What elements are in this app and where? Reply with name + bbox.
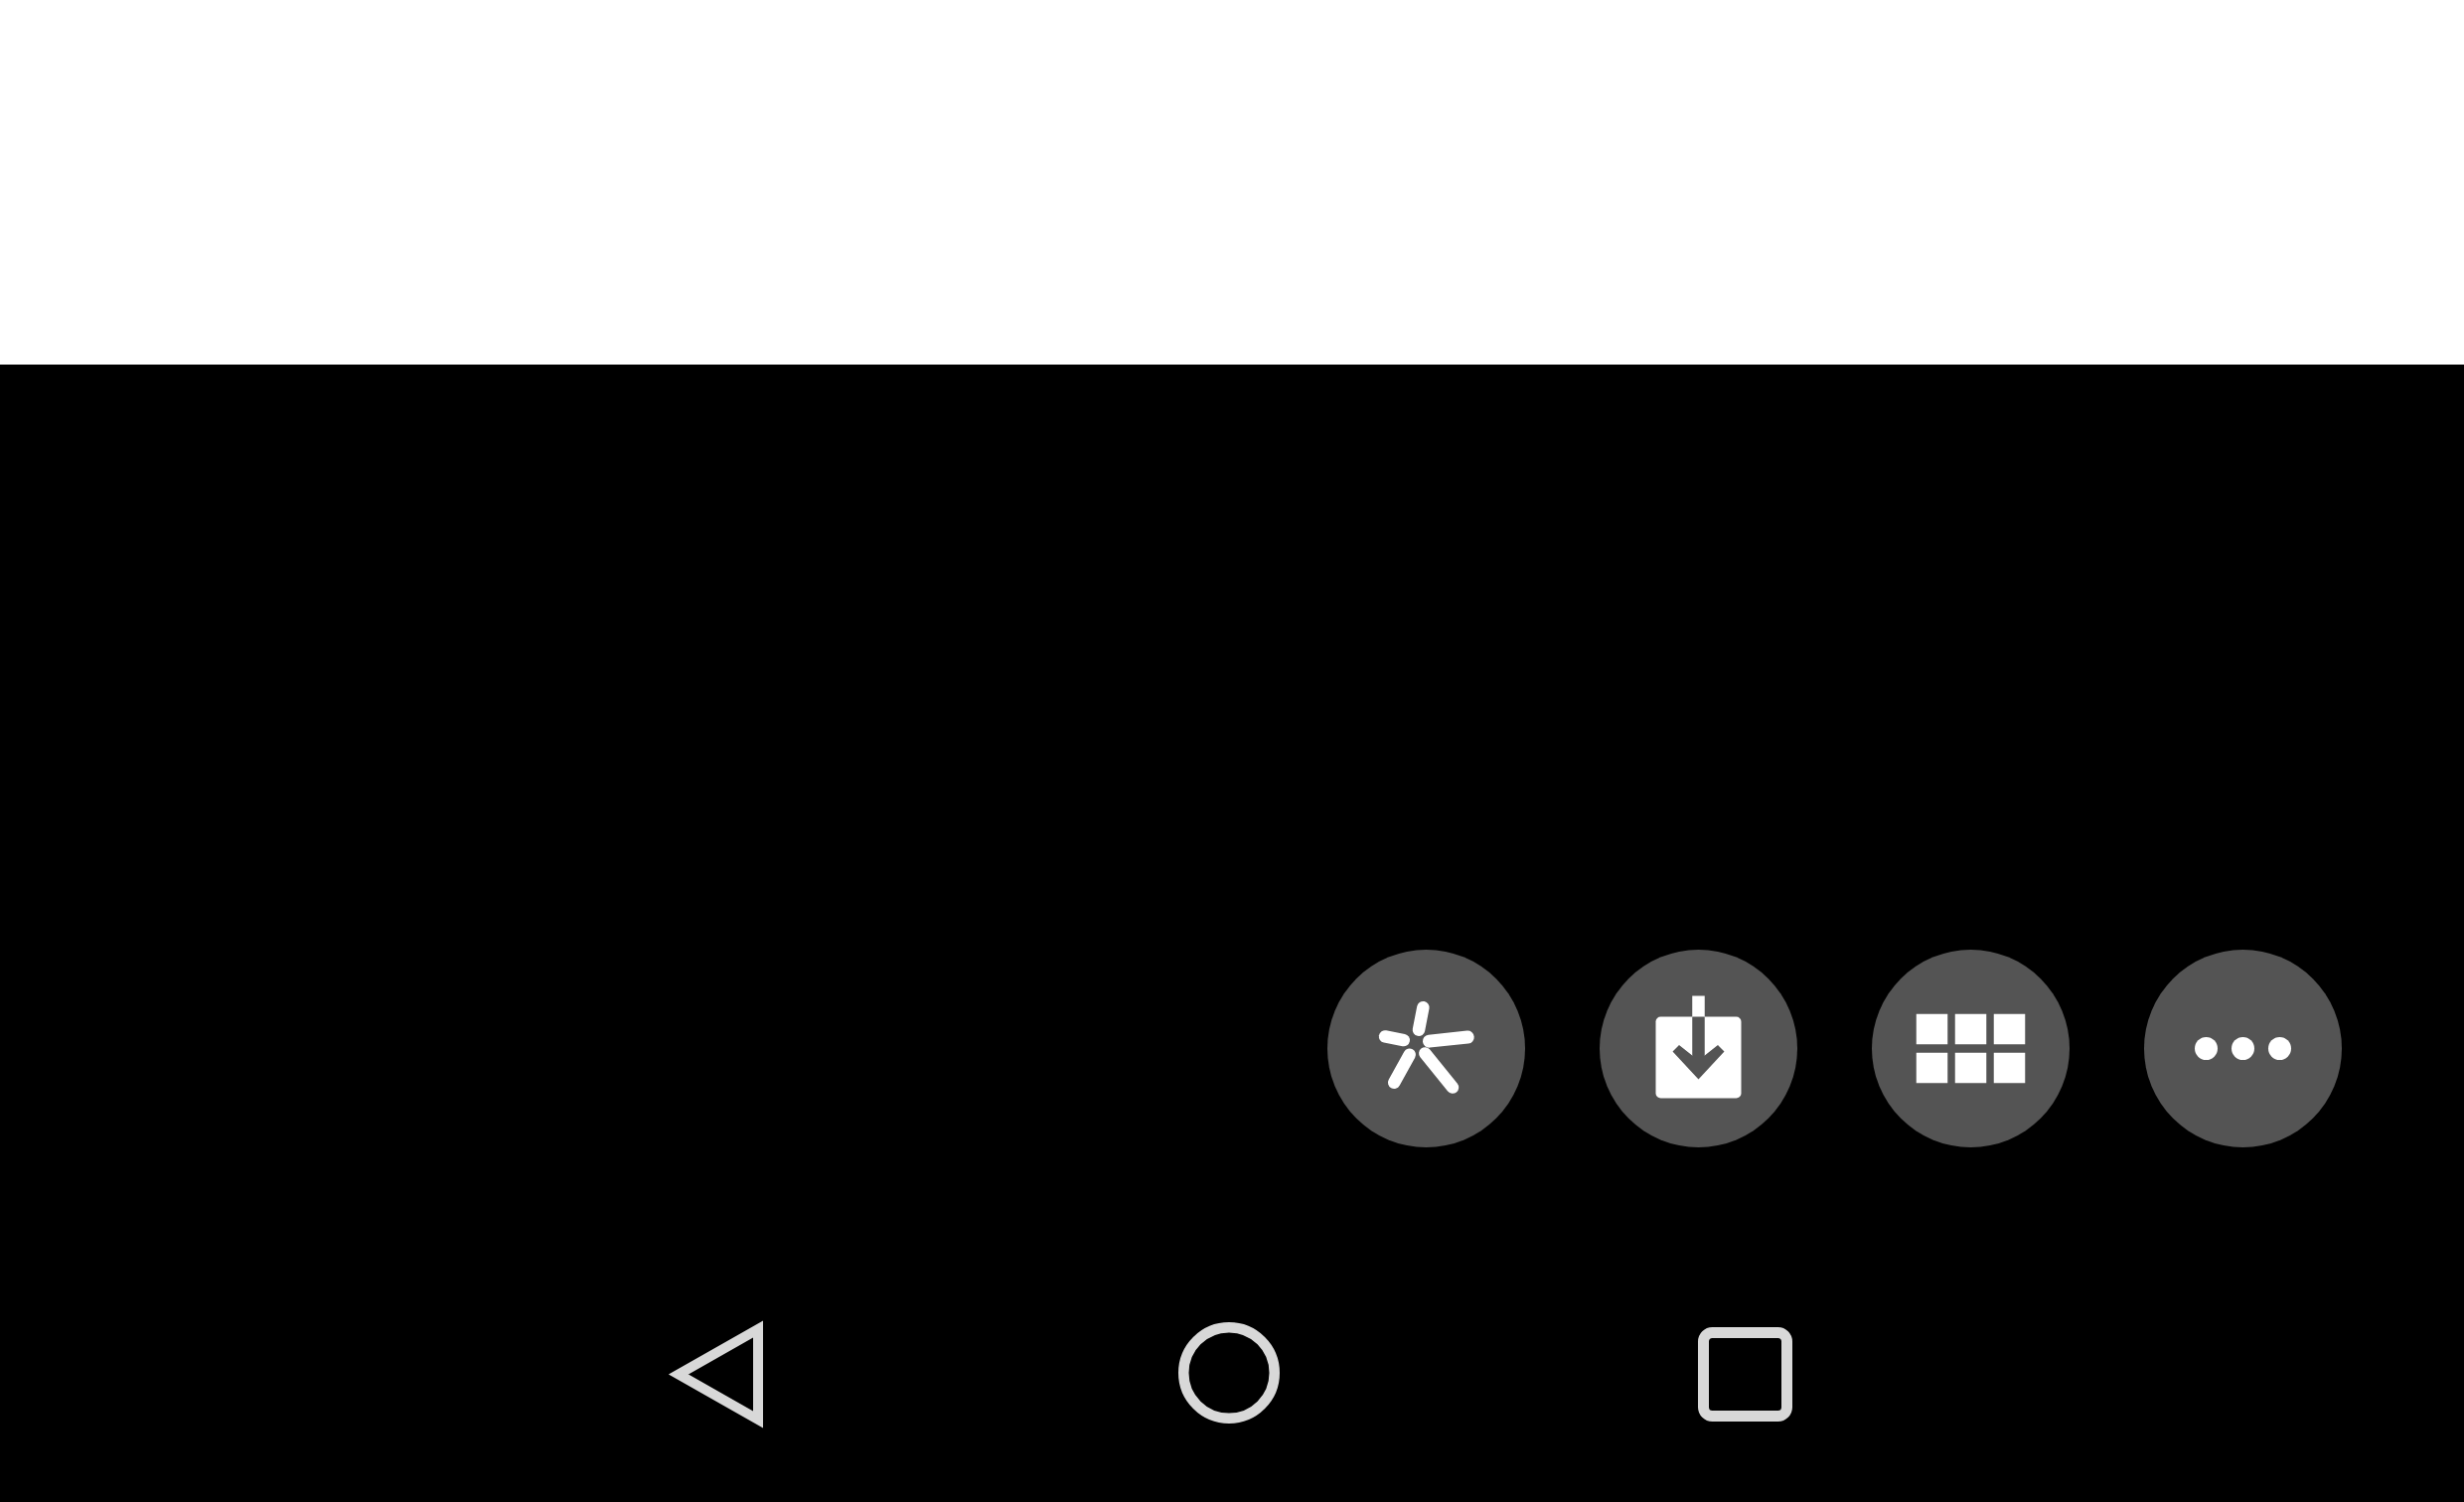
button[interactable]: More options: [2144, 950, 2342, 1147]
button[interactable]: Apps: [1872, 950, 2070, 1147]
button[interactable]: Back: [643, 1299, 792, 1448]
button[interactable]: Recent apps: [1670, 1299, 1819, 1448]
button[interactable]: Sparkle: [1327, 950, 1525, 1147]
button[interactable]: Home: [1155, 1298, 1304, 1447]
button[interactable]: Download: [1600, 950, 1797, 1147]
